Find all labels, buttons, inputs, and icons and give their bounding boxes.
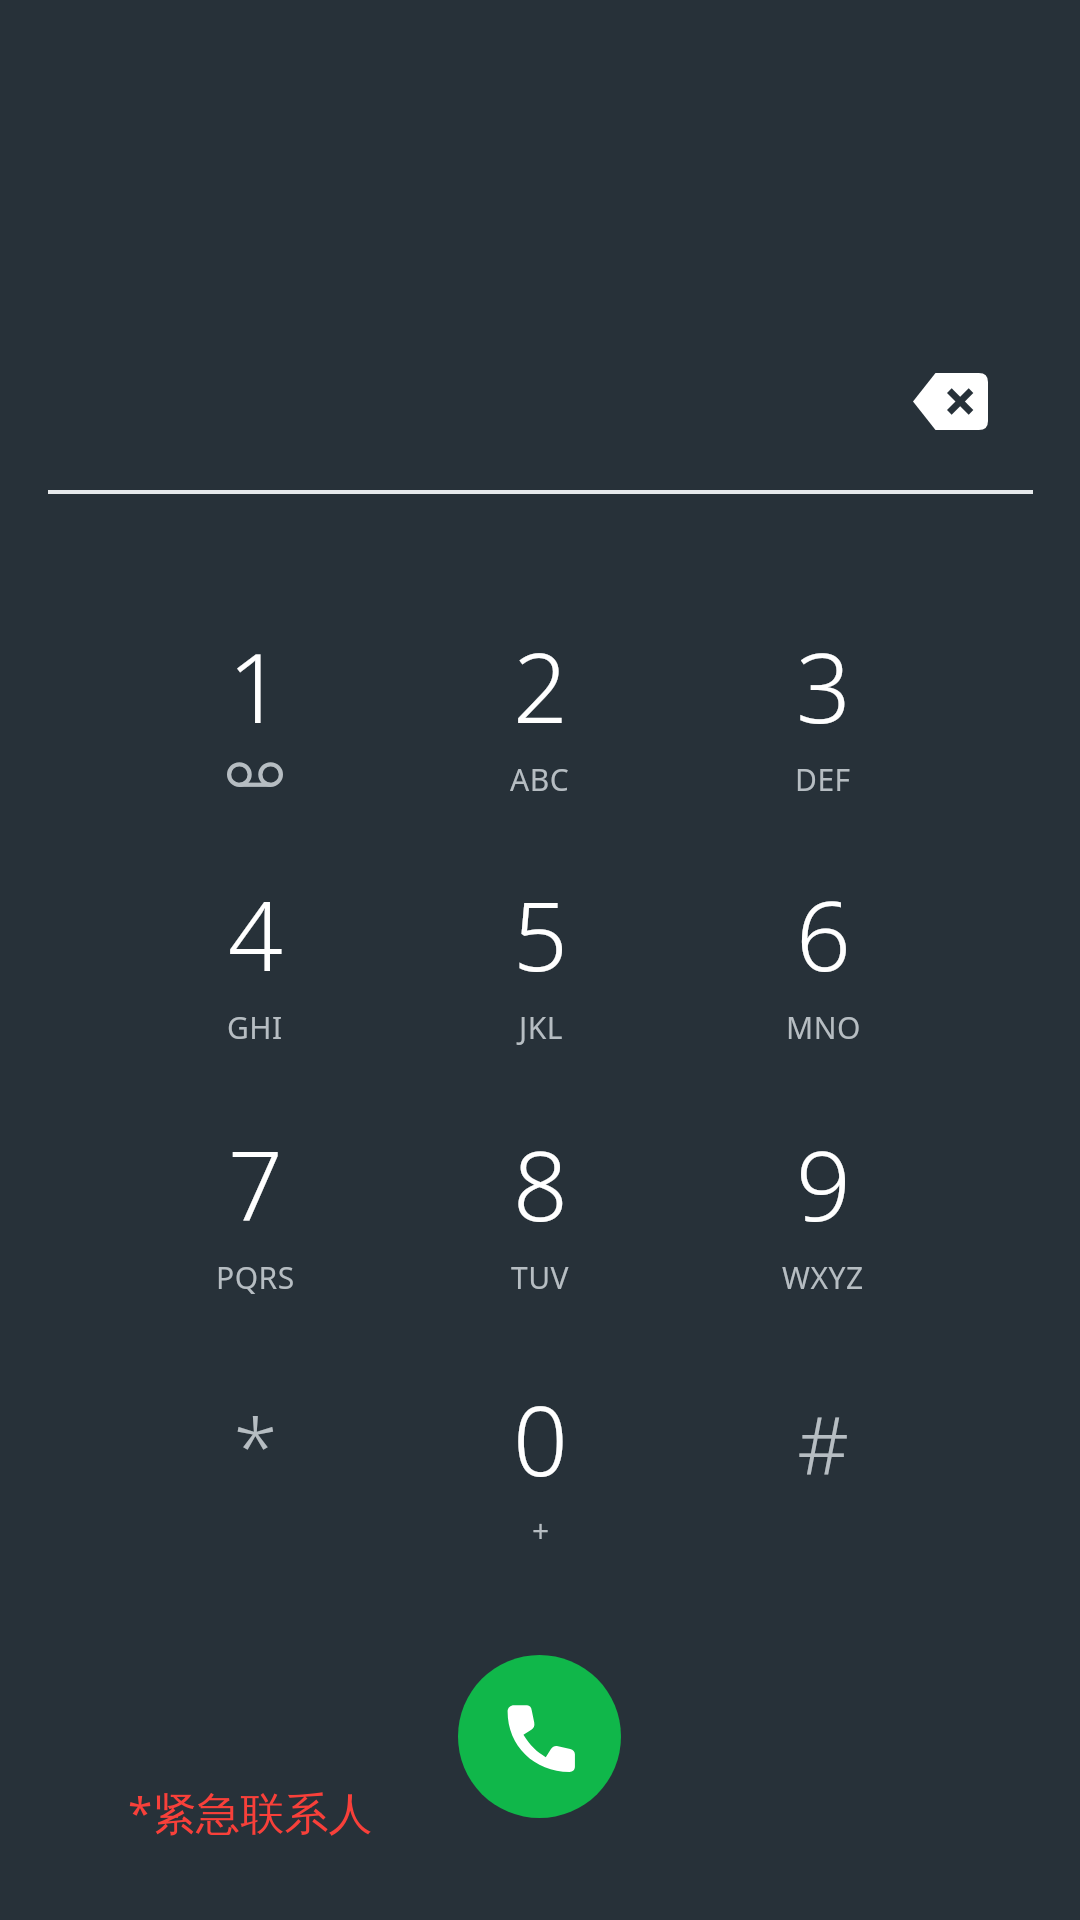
button[interactable]: *紧急联系人 (128, 1782, 373, 1842)
staticText: DEF (795, 759, 851, 800)
staticText: 0 (513, 1373, 568, 1504)
staticText: ABC (510, 759, 570, 800)
staticText: 2 (513, 620, 568, 751)
staticText: 6 (796, 868, 851, 999)
button[interactable]: Call (458, 1655, 621, 1818)
button[interactable]: 9 (703, 0, 943, 1920)
staticText: 8 (513, 1118, 568, 1249)
staticText: WXYZ (782, 1257, 864, 1298)
staticText: 5 (513, 868, 568, 999)
staticText: 1 (228, 620, 283, 751)
staticText: TUV (511, 1257, 570, 1298)
staticText: *紧急联系人 (128, 1782, 373, 1842)
button[interactable]: 3 (703, 0, 943, 1920)
staticText: PQRS (216, 1257, 295, 1298)
staticText: # (797, 1388, 849, 1497)
button[interactable]: 4 (135, 0, 375, 1920)
staticText: MNO (786, 1007, 861, 1048)
button[interactable]: 7 (135, 0, 375, 1920)
button[interactable]: 2 (420, 0, 660, 1920)
staticText: JKL (519, 1007, 563, 1048)
staticText: GHI (227, 1007, 283, 1048)
button[interactable]: Backspace (880, 355, 1020, 447)
button[interactable]: 6 (703, 0, 943, 1920)
button[interactable]: # (703, 0, 943, 1920)
staticText: + (532, 1510, 550, 1551)
button[interactable]: 5 (420, 0, 660, 1920)
button[interactable]: 8 (420, 0, 660, 1920)
staticText: 4 (228, 868, 283, 999)
staticText: * (233, 1390, 278, 1499)
button[interactable]: 1 (135, 0, 375, 1920)
button[interactable]: 0 (420, 0, 660, 1920)
staticText: 7 (228, 1118, 283, 1249)
staticText: 3 (796, 620, 851, 751)
button[interactable]: * (135, 0, 375, 1920)
staticText: 9 (796, 1118, 851, 1249)
